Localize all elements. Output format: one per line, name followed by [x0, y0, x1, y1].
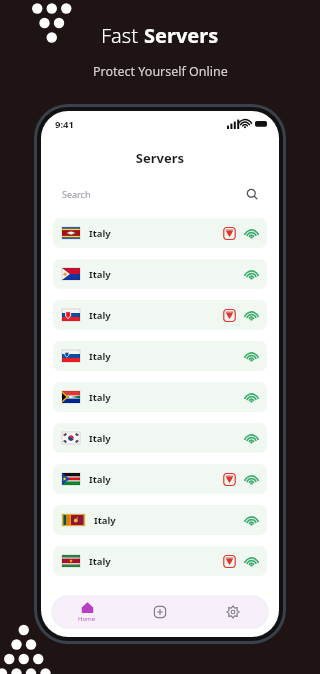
button[interactable]: Italy [53, 382, 267, 412]
staticText: Fast [101, 22, 144, 49]
staticText: Home [78, 615, 96, 623]
button[interactable]: Italy [53, 464, 267, 494]
staticText: 9:41 [55, 118, 74, 131]
button[interactable]: Premium [223, 309, 236, 322]
staticText: Italy [89, 268, 111, 281]
staticText: Italy [89, 432, 111, 445]
button[interactable]: Italy [53, 546, 267, 576]
staticText: Search [62, 188, 91, 200]
staticText: Italy [89, 309, 111, 322]
button[interactable]: Italy [53, 259, 267, 289]
button[interactable]: Connect [245, 473, 258, 486]
button[interactable]: Connect [245, 227, 258, 240]
button[interactable]: Connect [245, 350, 258, 363]
button[interactable]: Connect [245, 432, 258, 445]
button[interactable]: Connect [245, 268, 258, 281]
staticText: Italy [94, 514, 116, 527]
button[interactable]: Home [51, 595, 123, 629]
staticText: Italy [89, 555, 111, 568]
staticText: Italy [89, 473, 111, 486]
staticText: Servers [144, 22, 219, 49]
button[interactable]: Connect [245, 514, 258, 527]
staticText: Italy [89, 350, 111, 363]
button[interactable]: Italy [53, 341, 267, 371]
staticText: Italy [89, 227, 111, 240]
button[interactable]: Settings [196, 595, 269, 629]
staticText: Servers [41, 149, 279, 167]
button[interactable]: Connect [245, 555, 258, 568]
button[interactable]: Italy [53, 218, 267, 248]
button[interactable]: Search [53, 181, 267, 207]
button[interactable]: Premium [223, 227, 236, 240]
button[interactable]: Italy [53, 505, 267, 535]
button[interactable]: Connect [245, 391, 258, 404]
staticText: Protect Yourself Online [93, 63, 228, 80]
button[interactable]: Italy [53, 300, 267, 330]
button[interactable]: Add server [123, 595, 196, 629]
staticText: Italy [89, 391, 111, 404]
button[interactable]: Connect [245, 309, 258, 322]
button[interactable]: Italy [53, 423, 267, 453]
button[interactable]: Premium [223, 555, 236, 568]
button[interactable]: Premium [223, 473, 236, 486]
